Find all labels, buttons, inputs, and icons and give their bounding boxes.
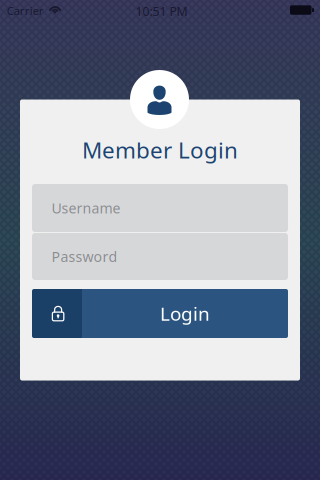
staticText: Carrier [7, 3, 44, 18]
staticText: Username [51, 198, 120, 218]
button[interactable]: Login [32, 289, 288, 338]
button[interactable]: Username [32, 184, 288, 232]
button[interactable]: Password [32, 233, 288, 280]
staticText: Password [51, 247, 117, 266]
staticText: Login [160, 301, 210, 326]
staticText: Member Login [82, 134, 238, 165]
staticText: 10:51 PM [135, 3, 187, 19]
